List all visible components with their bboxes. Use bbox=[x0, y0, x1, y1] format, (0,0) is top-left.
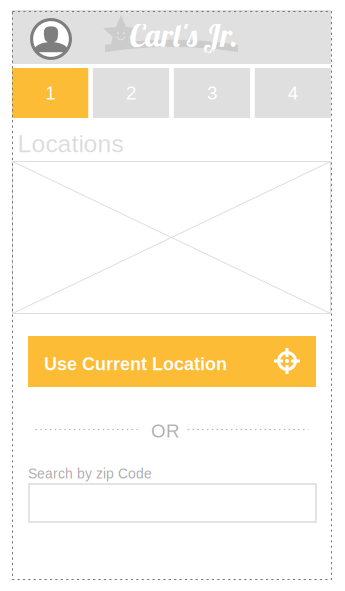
button[interactable]: 1 bbox=[12, 68, 88, 118]
staticText: Carl's Jr. bbox=[129, 16, 238, 54]
staticText: Search by zip Code bbox=[28, 466, 152, 481]
staticText: Use Current Location bbox=[44, 354, 227, 374]
staticText: 1 bbox=[45, 83, 55, 103]
staticText: 4 bbox=[288, 83, 298, 103]
staticText: 2 bbox=[126, 83, 136, 103]
staticText: CHARBROILED BURGERS bbox=[131, 48, 221, 56]
button[interactable]: Use Current Location bbox=[28, 336, 316, 387]
staticText: 3 bbox=[207, 83, 217, 103]
staticText: OR bbox=[151, 420, 179, 441]
button[interactable] bbox=[28, 483, 317, 523]
staticText: Locations bbox=[17, 130, 123, 158]
